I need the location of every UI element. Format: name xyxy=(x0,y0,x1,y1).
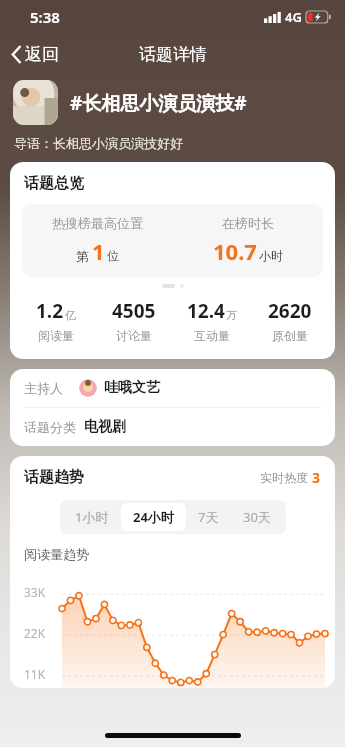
staticText: 话题详情 xyxy=(139,44,207,65)
staticText: 5:38 xyxy=(30,7,60,27)
staticText: 22K xyxy=(24,625,46,641)
staticText: 实时热度 xyxy=(260,470,308,485)
staticText: 24小时 xyxy=(133,508,174,526)
button[interactable]: 话题分类 xyxy=(10,408,335,446)
staticText: 1 xyxy=(92,236,105,266)
staticText: 1.2 xyxy=(36,298,64,324)
staticText: 互动量 xyxy=(194,328,230,343)
staticText: 3 xyxy=(312,468,321,487)
staticText: 10.7 xyxy=(213,236,257,266)
staticText: 11K xyxy=(24,666,46,682)
staticText: 亿 xyxy=(65,308,76,322)
staticText: 2620 xyxy=(268,298,312,324)
staticText: 位 xyxy=(107,248,119,263)
staticText: #长相思小演员演技# xyxy=(70,90,247,116)
button[interactable]: Topic avatar xyxy=(13,80,58,125)
staticText: 电视剧 xyxy=(84,418,126,436)
staticText: 讨论量 xyxy=(116,328,152,343)
staticText: 导语：长相思小演员演技好好 xyxy=(14,135,183,151)
button[interactable]: 返回 xyxy=(8,40,63,69)
staticText: 第 xyxy=(76,248,89,264)
staticText: 热搜榜最高位置 xyxy=(52,215,143,231)
staticText: 话题总览 xyxy=(24,174,84,193)
staticText: 小时 xyxy=(259,248,283,263)
staticText: 4G xyxy=(285,8,302,26)
staticText: 返回 xyxy=(25,44,59,65)
staticText: 主持人 xyxy=(24,380,63,396)
button[interactable]: 1小时 xyxy=(63,503,121,531)
button[interactable]: 主持人 xyxy=(10,369,335,407)
staticText: 万 xyxy=(226,308,237,322)
staticText: 在榜时长 xyxy=(222,215,274,231)
staticText: 33K xyxy=(24,584,46,600)
staticText: 阅读量趋势 xyxy=(24,546,89,562)
staticText: 哇哦文艺 xyxy=(104,379,160,397)
staticText: 12.4 xyxy=(187,298,225,324)
staticText: 原创量 xyxy=(272,328,308,343)
staticText: 1小时 xyxy=(75,508,109,526)
staticText: 30天 xyxy=(243,508,271,526)
button[interactable]: 30天 xyxy=(231,503,283,531)
button[interactable]: 24小时 xyxy=(121,503,186,531)
staticText: 阅读量 xyxy=(38,328,74,343)
staticText: 7天 xyxy=(198,508,219,526)
button[interactable]: 7天 xyxy=(186,503,231,531)
staticText: 话题分类 xyxy=(24,419,76,435)
button[interactable]: 热搜榜最高位置 xyxy=(22,204,323,277)
staticText: 4505 xyxy=(112,298,156,324)
staticText: 话题趋势 xyxy=(24,468,84,487)
